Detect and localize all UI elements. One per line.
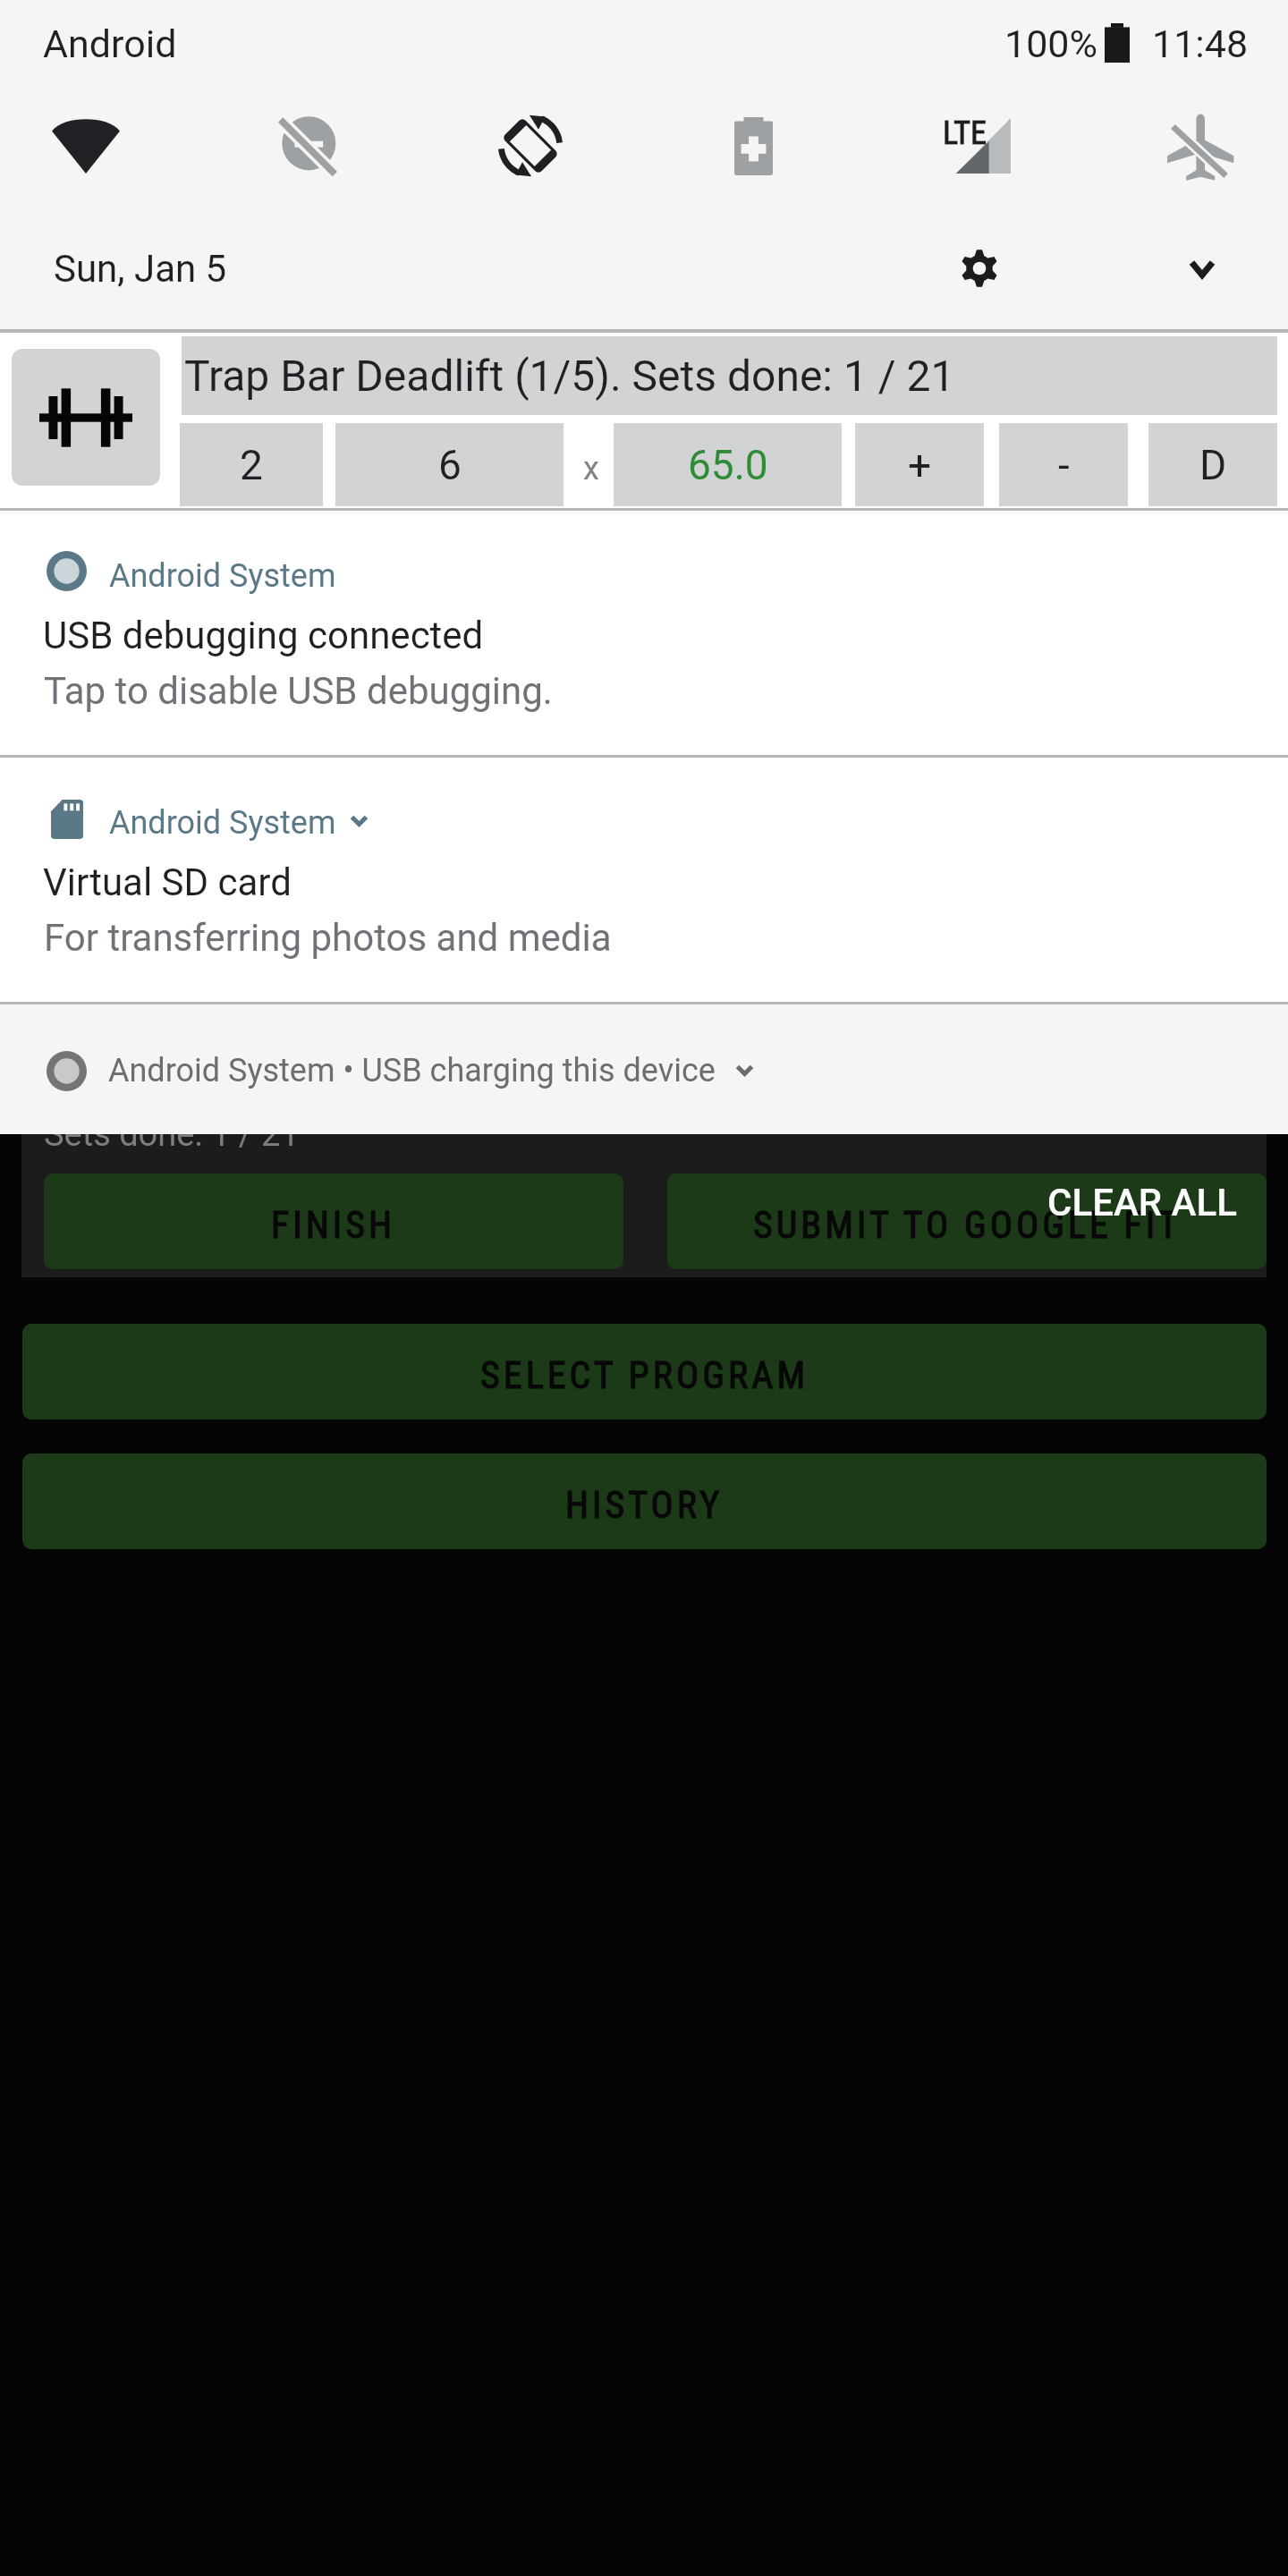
button[interactable]: 6 — [335, 423, 563, 506]
staticText: FINISH — [271, 1203, 396, 1247]
staticText: Sets done: 1 / 21 — [44, 1114, 300, 1155]
button[interactable]: SUBMIT TO GOOGLE FIT — [667, 1174, 1267, 1269]
staticText: HISTORY — [565, 1483, 724, 1527]
staticText: Android — [43, 21, 177, 66]
button[interactable]: 65.0 — [614, 423, 842, 506]
button[interactable]: Open workout — [12, 349, 160, 486]
button[interactable]: D — [1148, 423, 1277, 506]
staticText: Android System • USB charging this devic… — [108, 1052, 716, 1089]
staticText: Android System — [109, 804, 336, 842]
staticText: D — [1199, 441, 1227, 489]
staticText: SUBMIT TO GOOGLE FIT — [753, 1203, 1182, 1247]
button[interactable]: Settings — [930, 219, 1029, 318]
button[interactable]: 2 — [180, 423, 323, 506]
button[interactable]: Battery saver — [698, 90, 809, 201]
button[interactable]: - — [999, 423, 1128, 506]
button[interactable]: Auto-rotate — [475, 90, 586, 201]
staticText: For transferring photos and media — [44, 916, 612, 960]
staticText: LTE — [943, 114, 987, 152]
staticText: 6 — [438, 441, 462, 489]
staticText: USB debugging connected — [43, 614, 484, 657]
staticText: x — [583, 450, 599, 487]
button[interactable]: Mobile data — [921, 90, 1032, 201]
staticText: 2 — [240, 441, 263, 489]
staticText: SELECT PROGRAM — [480, 1353, 809, 1397]
button[interactable]: Trap Bar Deadlift (1/5). Sets done: 1 / … — [182, 336, 1277, 415]
staticText: 65.0 — [688, 441, 768, 489]
staticText: Trap Bar Deadlift (1/5). Sets done: 1 / … — [184, 351, 955, 401]
staticText: Tap to disable USB debugging. — [44, 669, 553, 713]
staticText: 100% — [1004, 21, 1097, 66]
button[interactable]: FINISH — [44, 1174, 623, 1269]
staticText: 11:48 — [1152, 21, 1249, 66]
button[interactable]: Clear all notifications — [1026, 1165, 1258, 1241]
button[interactable]: Wi-Fi — [30, 90, 141, 201]
button[interactable]: Do not disturb — [252, 90, 363, 201]
staticText: Android System — [109, 557, 336, 595]
button[interactable]: SELECT PROGRAM — [22, 1324, 1267, 1419]
staticText: Sun, Jan 5 — [54, 247, 227, 291]
staticText: - — [1058, 441, 1070, 489]
button[interactable]: Airplane mode — [1144, 90, 1255, 201]
staticText: + — [908, 441, 932, 489]
button[interactable]: + — [855, 423, 984, 506]
button[interactable]: Expand quick settings — [1153, 219, 1251, 318]
staticText: CLEAR ALL — [1047, 1181, 1237, 1224]
staticText: Virtual SD card — [43, 860, 292, 904]
button[interactable]: HISTORY — [22, 1453, 1267, 1549]
